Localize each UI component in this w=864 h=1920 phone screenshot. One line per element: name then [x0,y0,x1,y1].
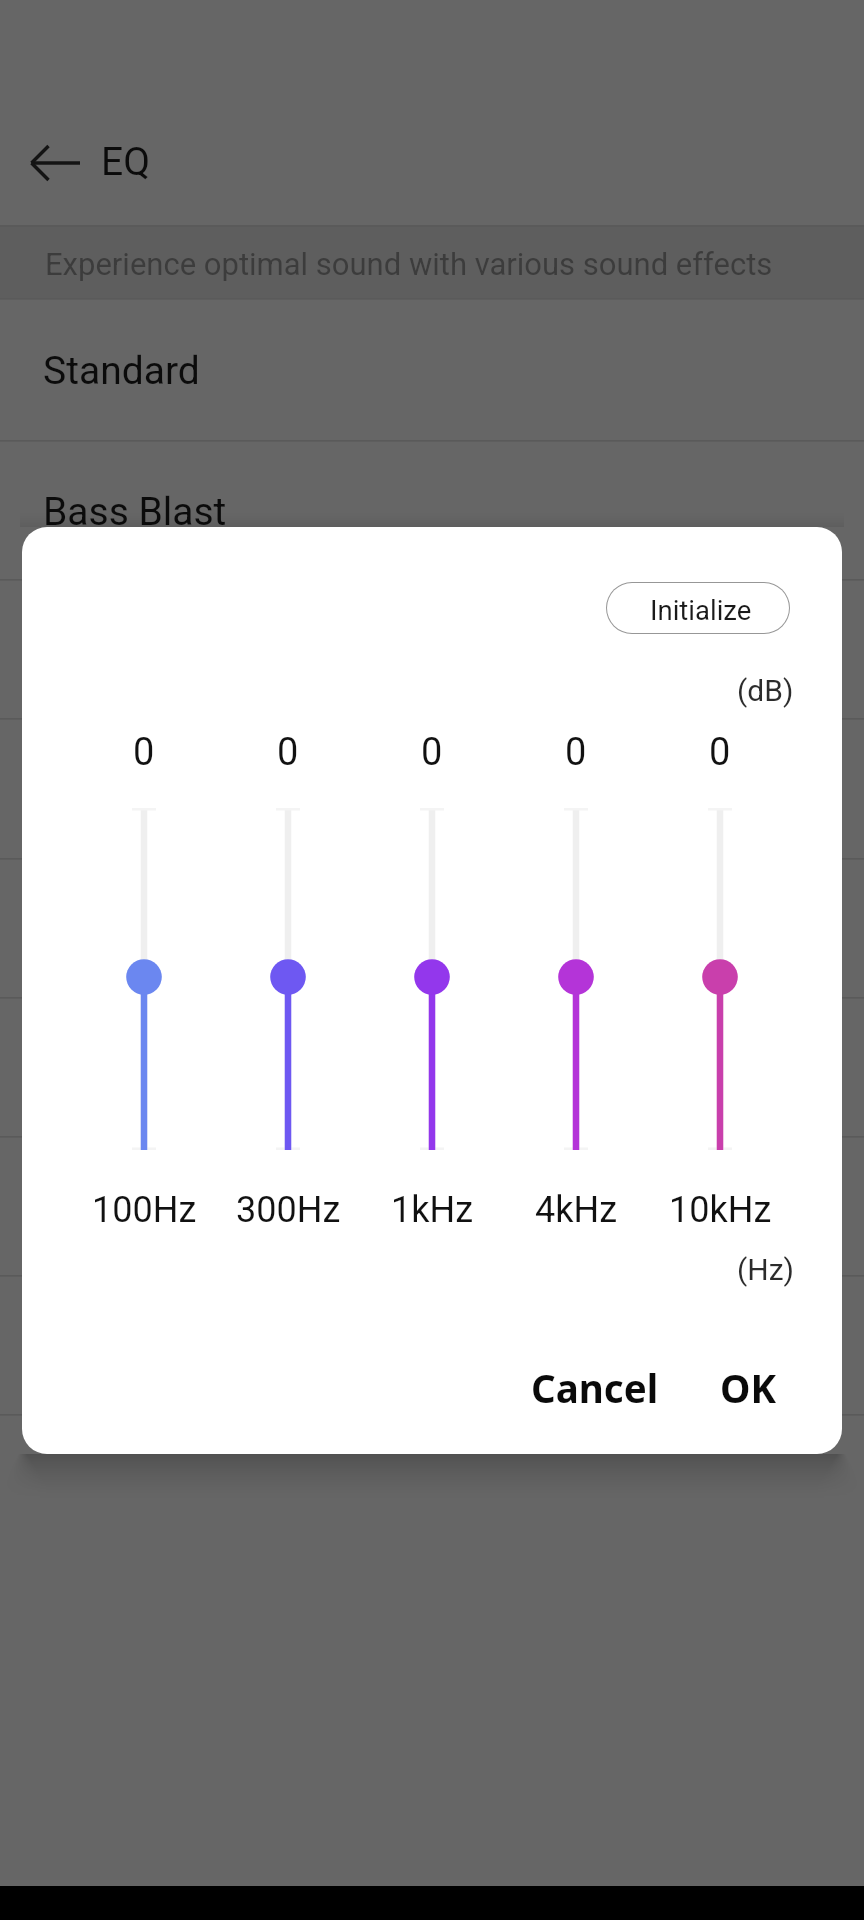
staticText: Bass Blast [43,489,227,535]
staticText: 300Hz [236,1189,341,1231]
staticText: Standard [43,348,200,394]
staticText: OK [720,1362,777,1414]
button[interactable]: Rock [0,858,864,997]
button[interactable]: Initialize [607,583,789,633]
staticText: 0 [277,730,299,775]
staticText: (dB) [737,673,794,708]
button[interactable]: Back [5,113,105,213]
staticText: Initialize [650,594,752,626]
button[interactable]: Standard [0,298,864,440]
staticText: 0 [421,730,443,775]
button[interactable]: Bass Blast [0,440,864,579]
button[interactable]: Cancel [513,1350,677,1426]
staticText: 100Hz [92,1189,197,1231]
staticText: EQ [101,139,150,185]
staticText: 4kHz [535,1189,618,1231]
button[interactable]: Jazz [0,1136,864,1275]
staticText: Jazz [43,1185,125,1231]
staticText: 0 [709,730,731,775]
staticText: 1kHz [391,1189,474,1231]
button[interactable]: Treble Boost [0,579,864,718]
button[interactable]: OK [702,1350,795,1426]
button[interactable]: Vocal Boost [0,718,864,858]
staticText: 0 [565,730,587,775]
button[interactable]: Classical [0,1275,864,1414]
staticText: Experience optimal sound with various so… [45,246,773,282]
staticText: 10kHz [669,1189,772,1231]
staticText: Cancel [531,1362,659,1414]
button[interactable]: Pop [0,997,864,1136]
staticText: 0 [133,730,155,775]
staticText: (Hz) [737,1252,794,1287]
